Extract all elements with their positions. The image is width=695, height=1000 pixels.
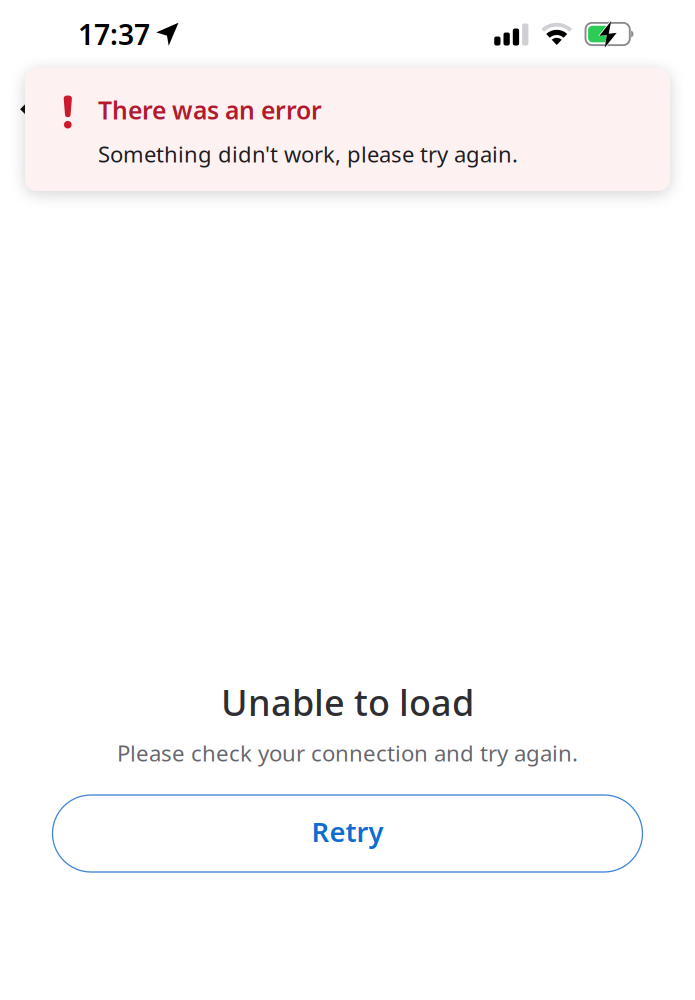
staticText: Unable to load: [221, 678, 474, 726]
button[interactable]: Back: [0, 0, 56, 220]
staticText: Retry: [311, 813, 383, 850]
button[interactable]: Retry: [52, 795, 642, 872]
staticText: 17:37: [78, 15, 150, 53]
staticText: There was an error: [98, 94, 322, 126]
staticText: Please check your connection and try aga…: [117, 738, 578, 768]
staticText: Something didn't work, please try again.: [98, 139, 518, 169]
